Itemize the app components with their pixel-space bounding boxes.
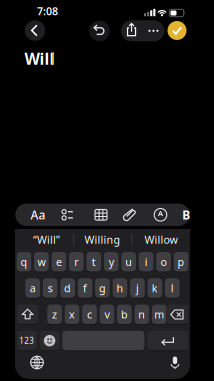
- button[interactable]: Shift: [17, 305, 39, 324]
- staticText: 7:08: [37, 4, 58, 18]
- button[interactable]: Done: [167, 21, 186, 40]
- button[interactable]: Share: [121, 20, 142, 41]
- staticText: m: [154, 307, 164, 321]
- button[interactable]: Emoji: [39, 331, 60, 350]
- button[interactable]: Format: [25, 204, 51, 226]
- button[interactable]: Checklist: [56, 204, 78, 226]
- staticText: q: [20, 255, 27, 269]
- button[interactable]: s: [43, 278, 58, 298]
- staticText: Aa: [30, 207, 45, 223]
- staticText: a: [30, 281, 36, 295]
- staticText: i: [145, 255, 148, 269]
- button[interactable]: o: [156, 252, 171, 271]
- button[interactable]: n: [134, 305, 149, 324]
- button[interactable]: More: [142, 20, 164, 41]
- button[interactable]: u: [121, 252, 136, 271]
- staticText: l: [171, 281, 174, 295]
- staticText: d: [64, 281, 71, 295]
- button[interactable]: d: [60, 278, 75, 298]
- staticText: p: [177, 255, 184, 269]
- button[interactable]: w: [34, 252, 49, 271]
- staticText: r: [74, 255, 78, 269]
- button[interactable]: p: [174, 252, 188, 271]
- button[interactable]: y: [104, 252, 119, 271]
- button[interactable]: m: [152, 305, 167, 324]
- button[interactable]: t: [86, 252, 101, 271]
- staticText: n: [138, 307, 145, 321]
- button[interactable]: Delete: [166, 305, 188, 324]
- button[interactable]: Table: [90, 204, 112, 226]
- button[interactable]: q: [17, 252, 31, 271]
- staticText: s: [48, 281, 53, 295]
- staticText: k: [152, 281, 158, 295]
- staticText: j: [136, 281, 139, 295]
- staticText: Willow: [144, 232, 177, 247]
- button[interactable]: Undo: [89, 21, 110, 41]
- button[interactable]: i: [139, 252, 154, 271]
- staticText: x: [69, 307, 75, 321]
- button[interactable]: 123: [17, 331, 37, 350]
- staticText: c: [87, 307, 92, 321]
- staticText: g: [99, 281, 106, 295]
- staticText: h: [116, 281, 123, 295]
- button[interactable]: f: [78, 278, 92, 298]
- button[interactable]: a: [25, 278, 40, 298]
- staticText: b: [121, 307, 128, 321]
- staticText: w: [37, 255, 45, 269]
- staticText: u: [125, 255, 132, 269]
- button[interactable]: c: [82, 305, 97, 324]
- button[interactable]: x: [65, 305, 79, 324]
- button[interactable]: Attach: [119, 204, 141, 226]
- button[interactable]: Next keyboard: [30, 355, 44, 369]
- staticText: t: [92, 255, 96, 269]
- button[interactable]: l: [165, 278, 180, 298]
- button[interactable]: h: [113, 278, 127, 298]
- button[interactable]: Dictation: [168, 355, 182, 369]
- button[interactable]: Back: [25, 20, 45, 41]
- button[interactable]: k: [147, 278, 162, 298]
- button[interactable]: e: [51, 252, 66, 271]
- button[interactable]: j: [130, 278, 145, 298]
- staticText: o: [161, 255, 167, 269]
- staticText: f: [83, 281, 87, 295]
- staticText: “Will”: [33, 232, 60, 247]
- button[interactable]: Bold: [180, 204, 192, 226]
- button[interactable]: Return: [147, 331, 188, 350]
- staticText: 123: [19, 335, 34, 346]
- button[interactable]: v: [99, 305, 114, 324]
- button[interactable]: Willing: [74, 230, 130, 248]
- button[interactable]: “Will”: [18, 230, 74, 248]
- staticText: e: [56, 255, 62, 269]
- staticText: Willing: [84, 232, 120, 247]
- staticText: Will: [24, 48, 54, 69]
- button[interactable]: Willow: [133, 230, 189, 248]
- button[interactable]: r: [69, 252, 84, 271]
- button[interactable]: g: [95, 278, 110, 298]
- button[interactable]: b: [117, 305, 132, 324]
- staticText: B: [182, 207, 190, 223]
- button[interactable]: Markup: [149, 204, 171, 226]
- button[interactable]: z: [47, 305, 62, 324]
- staticText: y: [109, 255, 114, 269]
- staticText: z: [52, 307, 57, 321]
- staticText: v: [104, 307, 109, 321]
